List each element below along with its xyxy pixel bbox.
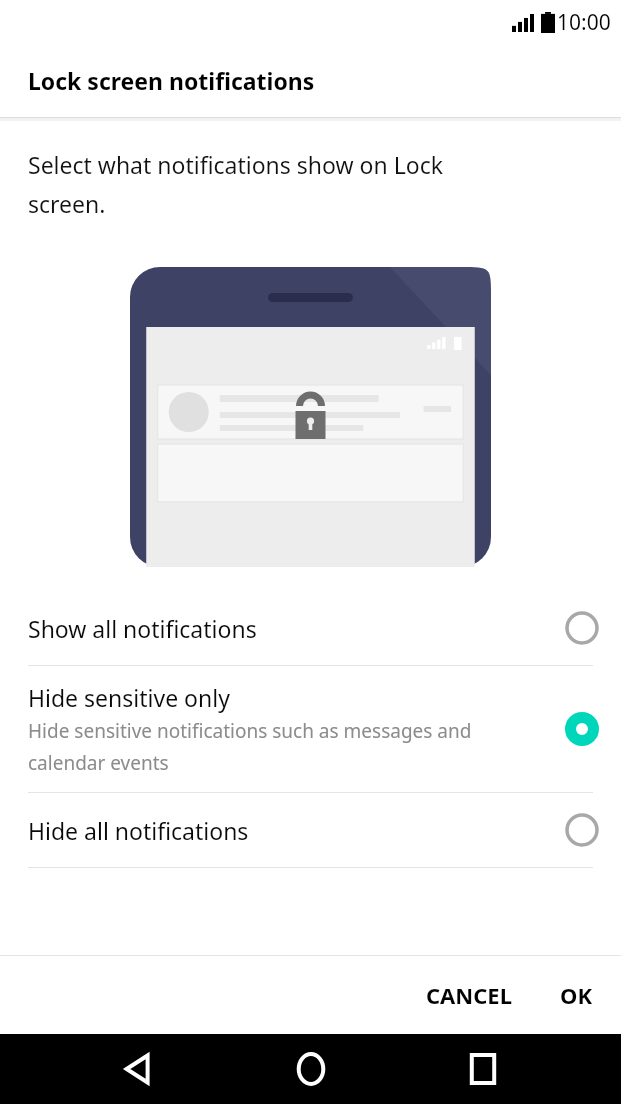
staticText: OK bbox=[560, 980, 593, 1010]
staticText: Hide sensitive only bbox=[28, 682, 230, 713]
button[interactable]: Home bbox=[276, 1034, 346, 1104]
button[interactable]: CANCEL bbox=[404, 966, 534, 1024]
button[interactable]: Hide all notifications bbox=[0, 793, 621, 867]
staticText: Hide sensitive notifications such as mes… bbox=[28, 718, 506, 776]
staticText: Lock screen notifications bbox=[28, 65, 315, 96]
button[interactable]: Back bbox=[103, 1034, 173, 1104]
staticText: 10:00 bbox=[557, 8, 611, 37]
button[interactable]: OK bbox=[534, 966, 621, 1024]
staticText: Hide all notifications bbox=[28, 815, 249, 846]
staticText: Show all notifications bbox=[28, 613, 257, 644]
button[interactable]: Hide sensitive only bbox=[0, 666, 621, 792]
staticText: Select what notifications show on Lock s… bbox=[28, 149, 523, 219]
button[interactable]: Show all notifications bbox=[0, 591, 621, 665]
button[interactable]: Recent apps bbox=[448, 1034, 518, 1104]
staticText: CANCEL bbox=[426, 980, 512, 1010]
